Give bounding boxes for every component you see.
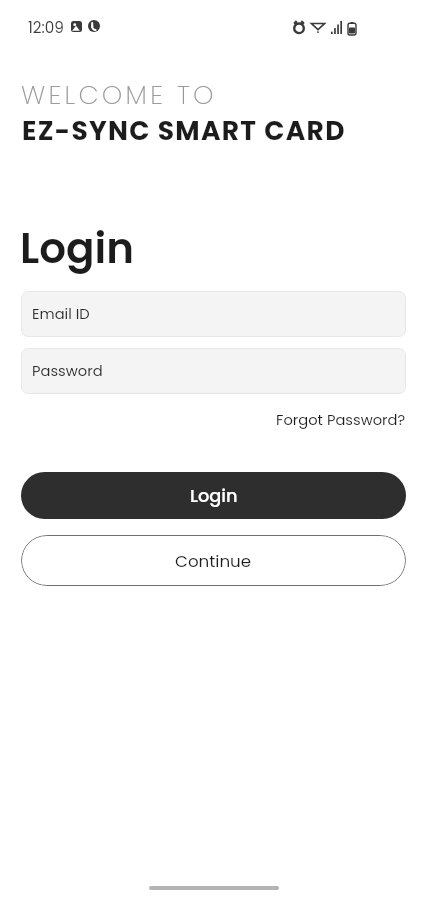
button[interactable]: Email ID <box>21 291 406 337</box>
other: Alarm <box>293 20 305 33</box>
staticText: Email ID <box>32 304 90 325</box>
other: Screenshot <box>71 21 82 32</box>
other: Signal <box>331 21 342 34</box>
other: Call <box>88 20 100 32</box>
other: Wifi <box>311 21 325 33</box>
staticText: Password <box>32 361 103 382</box>
staticText: 12:09 <box>28 17 64 38</box>
other: Battery <box>348 22 356 35</box>
staticText: Login <box>20 219 134 278</box>
staticText: WELCOME TO <box>21 77 217 113</box>
staticText: Forgot Password? <box>276 410 406 431</box>
button[interactable]: Password <box>21 348 406 394</box>
staticText: EZ-SYNC SMART CARD <box>22 112 346 149</box>
button[interactable]: Forgot Password? <box>262 409 406 431</box>
staticText: Login <box>190 483 238 508</box>
button[interactable]: Continue <box>21 535 406 586</box>
button[interactable]: Login <box>21 472 406 519</box>
staticText: Continue <box>175 549 252 572</box>
